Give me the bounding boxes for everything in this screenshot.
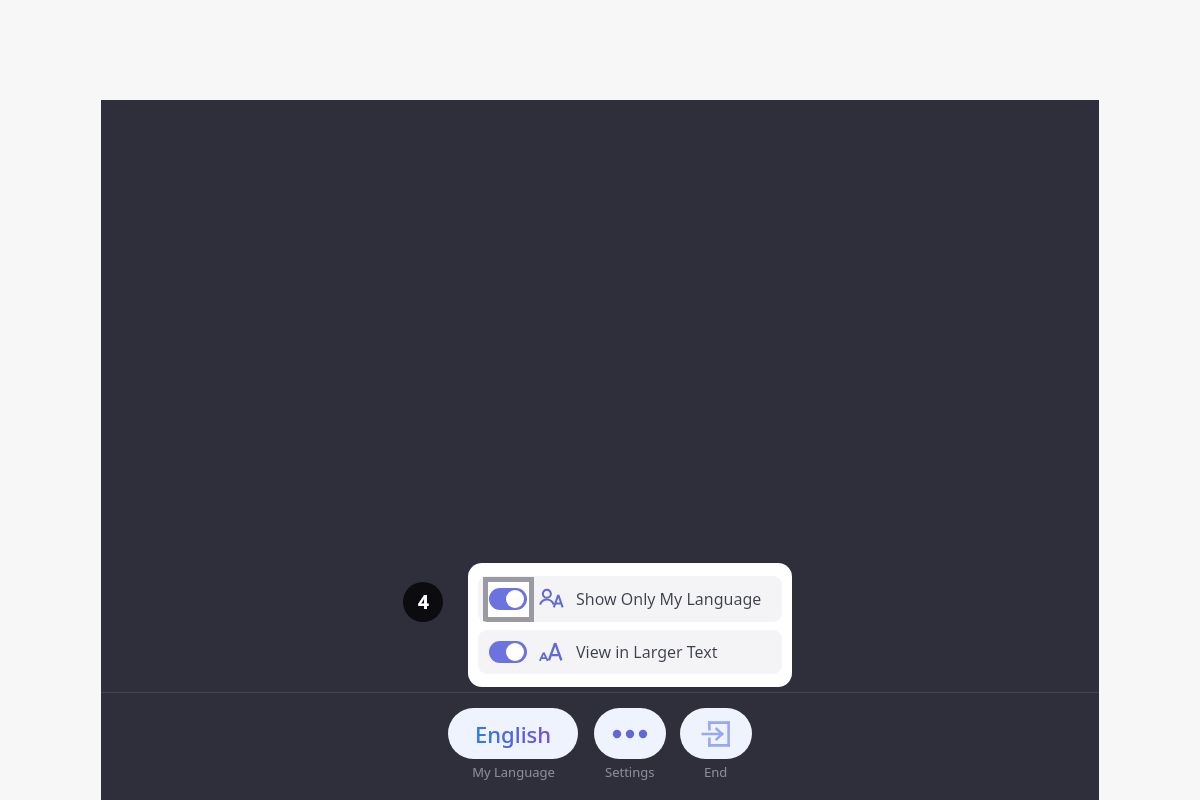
button[interactable]: View in Larger Text xyxy=(478,630,782,674)
staticText: End xyxy=(704,763,728,781)
staticText: Settings xyxy=(605,763,655,781)
staticText: View in Larger Text xyxy=(576,641,718,663)
button[interactable]: Settings xyxy=(594,708,666,759)
button[interactable]: English xyxy=(448,708,578,759)
staticText: Show Only My Language xyxy=(576,588,762,610)
staticText: English xyxy=(475,719,552,749)
button[interactable]: End xyxy=(680,708,752,759)
button[interactable]: Show Only My Language xyxy=(478,576,782,622)
staticText: 4 xyxy=(418,589,429,615)
staticText: My Language xyxy=(472,763,555,781)
